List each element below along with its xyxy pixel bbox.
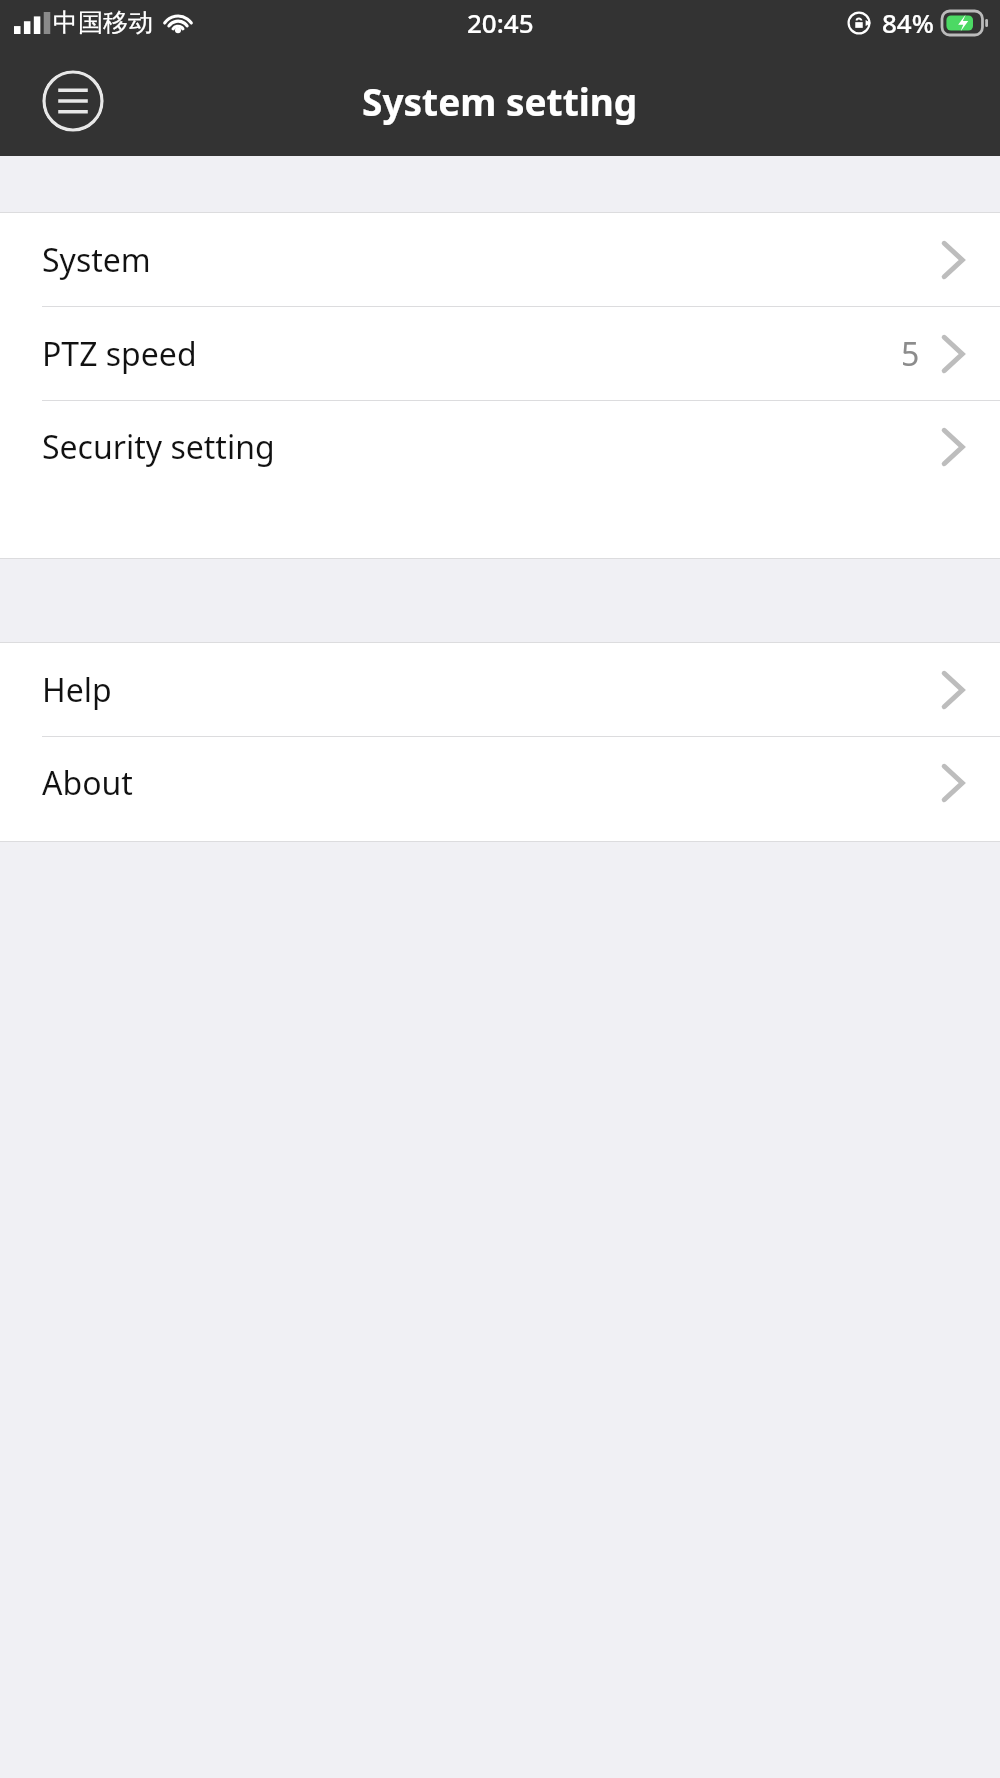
- staticText: Help: [42, 668, 112, 712]
- button[interactable]: Help: [0, 643, 1000, 737]
- staticText: Security setting: [42, 425, 275, 469]
- staticText: System setting: [362, 76, 638, 126]
- staticText: PTZ speed: [42, 332, 197, 376]
- staticText: About: [42, 761, 133, 805]
- button[interactable]: Menu: [42, 70, 104, 132]
- button[interactable]: Security setting: [0, 401, 1000, 493]
- other: Rotation lock: [846, 10, 872, 36]
- staticText: System: [42, 238, 151, 282]
- button[interactable]: PTZ speed: [0, 307, 1000, 401]
- staticText: 5: [901, 332, 920, 376]
- staticText: 20:45: [467, 5, 534, 40]
- button[interactable]: System: [0, 213, 1000, 307]
- staticText: 中国移动: [53, 7, 153, 38]
- button[interactable]: About: [0, 737, 1000, 829]
- staticText: 84%: [882, 5, 934, 40]
